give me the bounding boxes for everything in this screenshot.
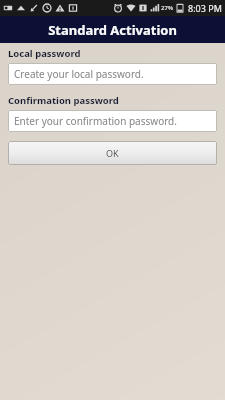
button[interactable]: Create your local password. [8, 63, 217, 85]
button[interactable]: OK [8, 141, 217, 165]
staticText: OK [106, 147, 119, 159]
staticText: Standard Activation [48, 21, 177, 39]
staticText: 27% [161, 4, 174, 12]
staticText: Create your local password. [14, 67, 144, 81]
staticText: Enter your confirmation password. [14, 114, 177, 128]
staticText: Confirmation password [8, 94, 119, 107]
staticText: 8:03 PM [188, 2, 222, 14]
button[interactable]: Enter your confirmation password. [8, 110, 217, 132]
staticText: Local password [8, 47, 81, 60]
